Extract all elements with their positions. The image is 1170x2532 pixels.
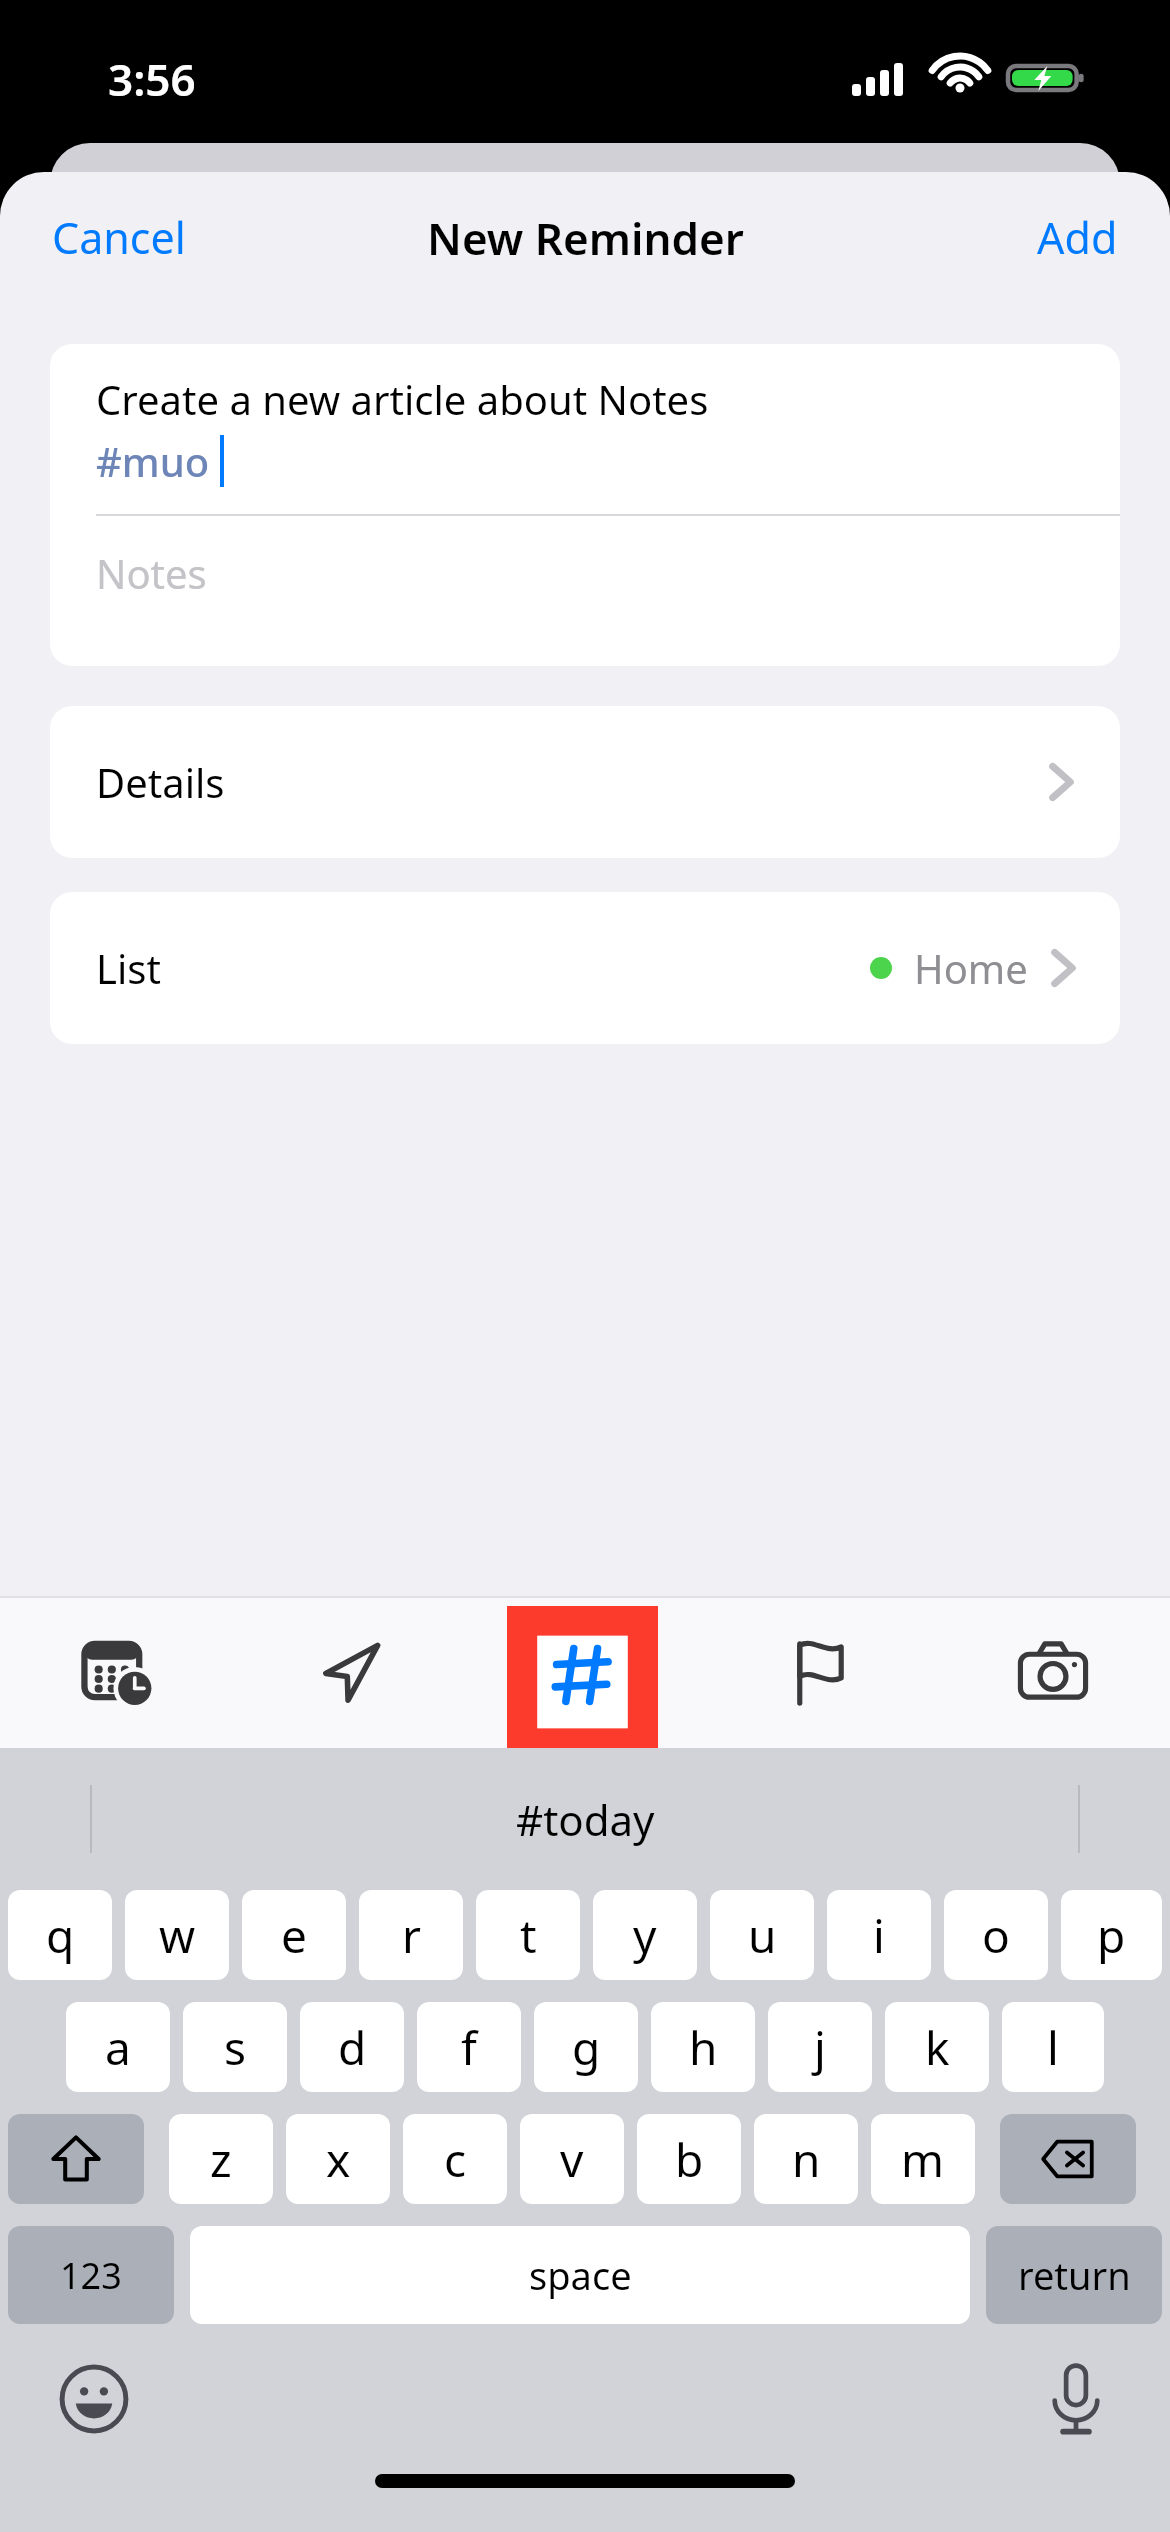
staticText: i — [873, 1904, 885, 1967]
button[interactable]: Add — [1017, 194, 1170, 281]
button[interactable]: Date and time — [0, 1596, 234, 1748]
staticText: l — [1047, 2016, 1059, 2079]
staticText: x — [326, 2128, 351, 2191]
staticText: Notes — [96, 546, 207, 600]
button[interactable]: Cancel — [0, 194, 206, 281]
button[interactable]: b — [637, 2114, 741, 2204]
staticText: o — [982, 1904, 1010, 1967]
staticText: New Reminder — [427, 208, 744, 268]
button[interactable]: t — [476, 1890, 580, 1980]
staticText: m — [901, 2128, 945, 2191]
button[interactable]: Emoji — [56, 2361, 132, 2437]
button[interactable]: s — [183, 2002, 287, 2092]
button[interactable]: Shift — [8, 2114, 144, 2204]
staticText: Home — [914, 941, 1028, 995]
button[interactable]: 123 — [8, 2226, 174, 2324]
staticText: f — [461, 2016, 477, 2079]
button[interactable]: u — [710, 1890, 814, 1980]
button[interactable]: Location — [234, 1596, 468, 1748]
staticText: #today — [516, 1791, 655, 1848]
button[interactable]: v — [520, 2114, 624, 2204]
button[interactable]: l — [1002, 2002, 1104, 2092]
button[interactable]: i — [827, 1890, 931, 1980]
button[interactable]: a — [66, 2002, 170, 2092]
staticText: space — [529, 2249, 632, 2301]
staticText: w — [159, 1904, 196, 1967]
button[interactable]: Photo — [936, 1596, 1170, 1748]
staticText: b — [675, 2128, 704, 2191]
button[interactable]: g — [534, 2002, 638, 2092]
staticText: y — [633, 1904, 657, 1967]
staticText: s — [224, 2016, 247, 2079]
staticText: #muo — [96, 434, 210, 488]
staticText: c — [444, 2128, 467, 2191]
staticText: n — [792, 2128, 821, 2191]
button[interactable]: Create a new article about Notes — [50, 344, 1120, 666]
button[interactable]: x — [286, 2114, 390, 2204]
button[interactable]: e — [242, 1890, 346, 1980]
staticText: 3:56 — [108, 49, 196, 109]
button[interactable]: j — [768, 2002, 872, 2092]
button[interactable]: Backspace — [1000, 2114, 1136, 2204]
staticText: Details — [96, 755, 225, 809]
button[interactable]: m — [871, 2114, 975, 2204]
button[interactable]: y — [593, 1890, 697, 1980]
button[interactable]: o — [944, 1890, 1048, 1980]
button[interactable]: h — [651, 2002, 755, 2092]
button[interactable]: Tag — [468, 1596, 702, 1748]
button[interactable]: k — [885, 2002, 989, 2092]
button[interactable]: w — [125, 1890, 229, 1980]
button[interactable]: List — [50, 892, 1120, 1044]
staticText: q — [46, 1904, 75, 1967]
staticText: j — [814, 2016, 826, 2079]
staticText: Add — [1037, 208, 1118, 267]
button[interactable]: Flag — [702, 1596, 936, 1748]
button[interactable]: d — [300, 2002, 404, 2092]
button[interactable]: f — [417, 2002, 521, 2092]
staticText: e — [281, 1904, 307, 1967]
staticText: r — [402, 1904, 421, 1967]
staticText: t — [520, 1904, 537, 1967]
button[interactable]: return — [986, 2226, 1162, 2324]
button[interactable]: Dictation — [1038, 2361, 1114, 2437]
button[interactable]: p — [1061, 1890, 1162, 1980]
button[interactable]: space — [190, 2226, 970, 2324]
button[interactable]: c — [403, 2114, 507, 2204]
staticText: u — [748, 1904, 777, 1967]
staticText: List — [96, 941, 161, 995]
staticText: p — [1097, 1904, 1126, 1967]
button[interactable]: n — [754, 2114, 858, 2204]
staticText: h — [689, 2016, 718, 2079]
staticText: 123 — [60, 2251, 122, 2300]
staticText: z — [210, 2128, 232, 2191]
staticText: a — [105, 2016, 131, 2079]
staticText: return — [1018, 2249, 1131, 2301]
staticText: v — [560, 2128, 584, 2191]
staticText: Create a new article about Notes — [96, 372, 709, 426]
staticText: Cancel — [52, 208, 186, 267]
button[interactable]: r — [359, 1890, 463, 1980]
button[interactable]: q — [8, 1890, 112, 1980]
button[interactable]: z — [169, 2114, 273, 2204]
button[interactable]: Details — [50, 706, 1120, 858]
staticText: k — [925, 2016, 950, 2079]
staticText: d — [338, 2016, 367, 2079]
staticText: g — [572, 2016, 601, 2079]
